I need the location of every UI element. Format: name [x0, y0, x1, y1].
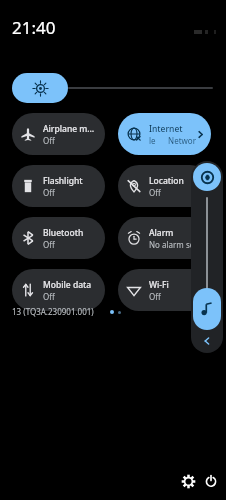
button[interactable]: Power	[200, 470, 222, 492]
staticText: Location	[149, 175, 184, 187]
button[interactable]: Airplane mode	[12, 113, 105, 155]
button[interactable]: Flashlight	[12, 165, 105, 207]
button[interactable]: Wi-Fi	[118, 269, 211, 311]
button[interactable]: Brightness	[12, 73, 68, 103]
button[interactable]: Settings	[177, 470, 199, 492]
staticText: Internet	[149, 123, 183, 135]
staticText: Mobile data	[43, 279, 92, 291]
button[interactable]: Mobile data	[12, 269, 105, 311]
staticText: Off	[149, 291, 161, 302]
button[interactable]: Location	[118, 165, 211, 207]
staticText: Off	[43, 135, 55, 146]
button[interactable]: Media volume	[193, 288, 221, 330]
staticText: Alarm	[149, 227, 174, 239]
button[interactable]: Alarm	[118, 217, 211, 259]
staticText: le Networ	[149, 135, 196, 146]
staticText: Off	[43, 291, 55, 302]
staticText: Flashlight	[43, 175, 83, 187]
button[interactable]: Bluetooth	[12, 217, 105, 259]
staticText: 13 (TQ3A.230901.001)	[12, 306, 94, 317]
button[interactable]: Back	[195, 332, 219, 350]
staticText: Off	[149, 187, 161, 198]
staticText: Off	[43, 239, 55, 250]
staticText: No alarm set	[149, 239, 198, 250]
staticText: Off	[43, 187, 55, 198]
button[interactable]: Ring mode	[193, 163, 221, 191]
staticText: 21:40	[12, 16, 56, 39]
staticText: Airplane mode	[43, 123, 99, 135]
staticText: Bluetooth	[43, 227, 84, 239]
button[interactable]: Internet	[118, 113, 211, 155]
staticText: Wi-Fi	[149, 279, 169, 291]
